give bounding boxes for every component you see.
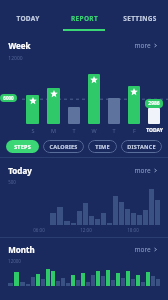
button[interactable]: more [132,39,160,52]
staticText: DISTANCE [127,143,156,150]
button[interactable]: STEPS [6,140,39,153]
staticText: TODAY [16,14,40,23]
button[interactable]: TODAY [0,0,56,34]
staticText: REPORT [71,14,98,23]
button[interactable]: F [124,62,144,134]
staticText: 12000 [8,55,23,62]
staticText: TIME [95,143,110,150]
button[interactable]: T [104,62,124,134]
staticText: M [51,127,56,134]
button[interactable]: DISTANCE [121,140,162,153]
staticText: Week [8,40,31,51]
staticText: T [72,127,76,134]
staticText: Today [8,165,32,176]
button[interactable]: TIME [88,140,117,153]
staticText: more [134,245,151,254]
button[interactable]: REPORT [56,0,112,34]
button[interactable]: more [132,164,160,177]
staticText: more [134,41,151,50]
staticText: 6000 [3,95,14,101]
button[interactable]: M [43,62,64,134]
button[interactable]: T [64,62,84,134]
button[interactable]: S [22,62,43,134]
staticText: STEPS [14,143,31,150]
staticText: S [31,127,35,134]
button[interactable]: CALORIES [43,140,84,153]
button[interactable]: more [132,243,160,256]
staticText: 06:00 [33,227,45,233]
staticText: W [91,127,97,134]
staticText: TODAY [146,127,163,134]
staticText: 18:00 [127,227,139,233]
staticText: 500 [8,179,16,185]
staticText: SETTINGS [123,14,157,23]
button[interactable]: SETTINGS [112,0,168,34]
button[interactable]: 2986 [144,62,164,134]
staticText: 2986 [148,100,160,107]
staticText: F [133,127,136,134]
staticText: CALORIES [49,143,78,150]
staticText: more [134,166,151,175]
button[interactable]: W [84,62,104,134]
staticText: T [112,127,116,134]
staticText: 12000 [8,258,21,264]
staticText: Month [8,244,35,255]
staticText: 12:00 [80,227,92,233]
